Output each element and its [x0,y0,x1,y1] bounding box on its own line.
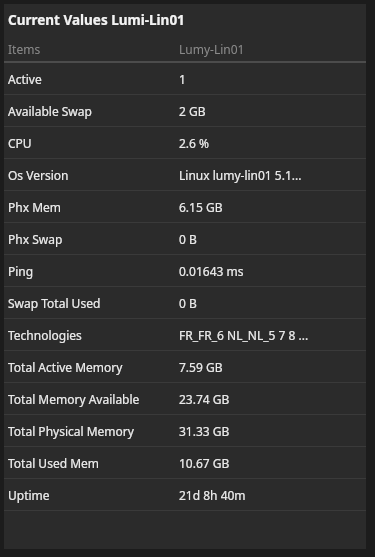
staticText: Total Memory Available [8,391,140,407]
staticText: Active [8,71,42,87]
button[interactable]: Total Active Memory [4,351,366,383]
button[interactable]: Os Version [4,159,366,191]
button[interactable]: Total Used Mem [4,447,366,479]
button[interactable]: Available Swap [4,95,366,127]
staticText: Available Swap [8,103,92,119]
staticText: Linux lumy-lin01 5.1... [179,167,359,183]
button[interactable]: CPU [4,127,366,159]
staticText: 31.33 GB [179,423,359,439]
button[interactable]: Phx Mem [4,191,366,223]
staticText: Current Values Lumi-Lin01 [8,11,185,29]
staticText: Total Used Mem [8,455,100,471]
staticText: Total Active Memory [8,359,123,375]
staticText: Technologies [8,327,82,343]
staticText: 2 GB [179,103,359,119]
button[interactable]: Swap Total Used [4,287,366,319]
staticText: 2.6 % [179,135,359,151]
staticText: Os Version [8,167,69,183]
staticText: Lumy-Lin01 [179,41,245,57]
staticText: Uptime [8,487,50,503]
button[interactable]: Total Physical Memory [4,415,366,447]
button[interactable]: Ping [4,255,366,287]
staticText: 0 B [179,231,359,247]
staticText: 10.67 GB [179,455,359,471]
staticText: CPU [8,135,32,151]
staticText: Total Physical Memory [8,423,134,439]
button[interactable]: Technologies [4,319,366,351]
staticText: Phx Swap [8,231,63,247]
button[interactable]: Phx Swap [4,223,366,255]
button[interactable]: Active [4,63,366,95]
staticText: 0.01643 ms [179,263,359,279]
staticText: Items [8,41,41,57]
staticText: 21d 8h 40m [179,487,359,503]
staticText: Ping [8,263,34,279]
staticText: 23.74 GB [179,391,359,407]
button[interactable]: Total Memory Available [4,383,366,415]
button[interactable]: Uptime [4,479,366,511]
staticText: 7.59 GB [179,359,359,375]
staticText: FR_FR_6 NL_NL_5 7 8 ... [179,327,359,343]
staticText: 0 B [179,295,359,311]
staticText: 6.15 GB [179,199,359,215]
staticText: 1 [179,71,359,87]
button[interactable]: Sort columns [4,36,366,61]
staticText: Swap Total Used [8,295,101,311]
staticText: Phx Mem [8,199,62,215]
